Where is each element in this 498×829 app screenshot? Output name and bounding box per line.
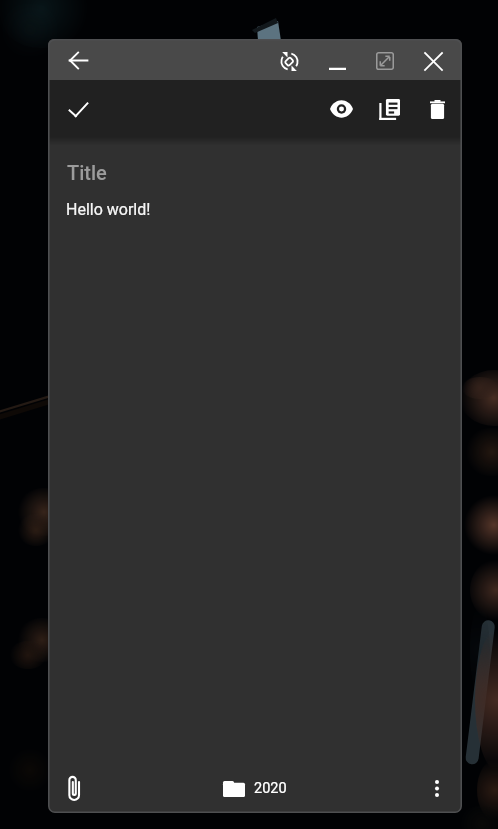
button[interactable]: Rotate screen (265, 41, 313, 81)
staticText: Hello world! (66, 200, 151, 219)
button[interactable]: Attach file (50, 764, 98, 812)
button[interactable]: Delete (413, 85, 461, 133)
button[interactable]: Save (54, 85, 102, 133)
button[interactable]: More options (413, 764, 461, 812)
staticText: 2020 (254, 780, 287, 797)
button[interactable]: Preview (317, 85, 365, 133)
button[interactable]: Back (54, 40, 102, 80)
staticText: Title (67, 161, 107, 184)
button[interactable]: Close (409, 41, 457, 81)
button[interactable]: Maximize (361, 41, 409, 81)
button[interactable]: 2020 (215, 774, 295, 803)
button[interactable]: Minimize (313, 41, 361, 81)
button[interactable]: Revisions (365, 85, 413, 133)
